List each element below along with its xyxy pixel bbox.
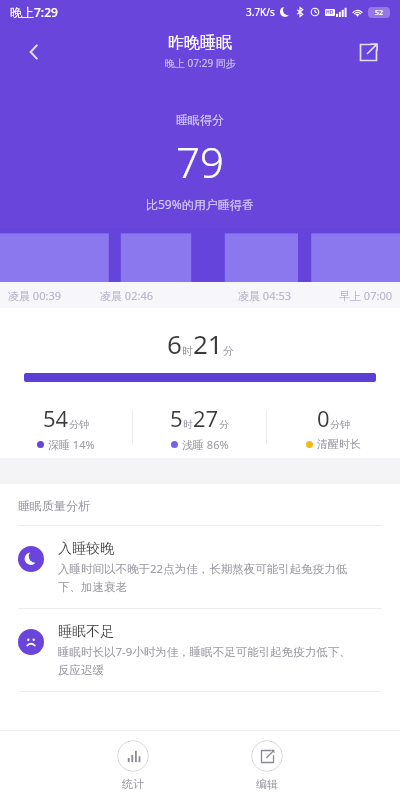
staticText: 晚上 07:29 同步 xyxy=(165,56,236,70)
button[interactable]: 睡眠不足 xyxy=(0,609,400,691)
staticText: 分钟 xyxy=(330,418,350,431)
staticText: 5 xyxy=(170,403,183,433)
staticText: 凌晨 04:53 xyxy=(238,288,291,303)
button[interactable]: Back xyxy=(12,30,56,74)
staticText: 清醒时长 xyxy=(317,437,361,451)
staticText: 深睡 14% xyxy=(48,437,95,452)
staticText: 时 xyxy=(183,418,193,431)
staticText: 27 xyxy=(193,403,219,433)
button[interactable]: 编辑 xyxy=(239,736,295,795)
staticText: 入睡较晚 xyxy=(58,540,114,558)
button[interactable]: 统计 xyxy=(105,736,161,795)
staticText: 54 xyxy=(43,403,69,433)
staticText: 分 xyxy=(223,344,234,358)
staticText: 0 xyxy=(317,403,330,433)
staticText: 比59%的用户睡得香 xyxy=(146,196,254,212)
staticText: 编辑 xyxy=(256,777,278,791)
button[interactable]: 入睡较晚 xyxy=(0,526,400,608)
staticText: 52 xyxy=(375,8,384,18)
button[interactable]: 0 xyxy=(267,403,400,451)
staticText: 睡眠得分 xyxy=(176,112,224,127)
staticText: 79 xyxy=(176,133,224,190)
staticText: 分钟 xyxy=(69,418,89,431)
staticText: 晚上7:29 xyxy=(10,4,58,20)
staticText: 浅睡 86% xyxy=(182,437,229,452)
staticText: HD xyxy=(326,9,334,16)
button[interactable]: 54 xyxy=(0,403,132,452)
staticText: 睡眠不足 xyxy=(58,623,114,641)
staticText: 昨晚睡眠 xyxy=(168,33,232,53)
staticText: 凌晨 00:39 xyxy=(8,288,61,303)
staticText: 时 xyxy=(182,344,193,358)
staticText: 睡眠时长以7‑9小时为佳，睡眠不足可能引起免疫力低下、 反应迟缓 xyxy=(58,644,351,677)
staticText: 分 xyxy=(219,418,229,431)
staticText: 3.7K/s xyxy=(246,5,275,19)
staticText: 21 xyxy=(193,326,223,361)
button[interactable]: Share xyxy=(346,30,390,74)
staticText: 入睡时间以不晚于22点为佳，长期熬夜可能引起免疫力低 下、加速衰老 xyxy=(58,561,348,594)
staticText: 6 xyxy=(167,326,182,361)
staticText: 早上 07:00 xyxy=(339,288,392,303)
staticText: 凌晨 02:46 xyxy=(100,288,153,303)
button[interactable]: 5 xyxy=(133,403,266,452)
staticText: 统计 xyxy=(122,777,144,791)
staticText: 睡眠质量分析 xyxy=(18,498,90,513)
